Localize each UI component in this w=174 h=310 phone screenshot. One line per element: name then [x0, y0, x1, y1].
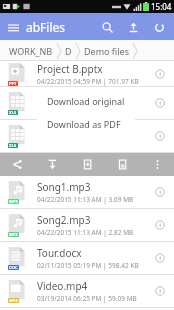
staticText: Download original	[47, 95, 125, 107]
staticText: MP4	[9, 298, 18, 303]
staticText: Song1.mp3	[37, 180, 91, 194]
staticText: quote.xlsx	[37, 91, 86, 105]
staticText: 02/11/2015 05:19 PM | 598.42 KB	[37, 261, 139, 270]
staticText: XLS	[9, 143, 17, 148]
button[interactable]: File info	[149, 214, 171, 236]
button[interactable]: Download as PDF	[37, 112, 135, 135]
button[interactable]: Download original	[37, 89, 135, 112]
staticText: 04/22/2015 11:13 AM | 12.21 KB	[37, 106, 136, 115]
button[interactable]: D	[62, 43, 75, 59]
button[interactable]: Download	[35, 153, 70, 176]
staticText: abFiles	[26, 19, 66, 35]
staticText: MP3	[9, 199, 18, 204]
staticText: Tour.docx	[37, 246, 82, 260]
button[interactable]: WORK_NB	[6, 43, 56, 59]
button[interactable]: MP3	[0, 176, 174, 208]
staticText: PPT	[9, 81, 17, 86]
button[interactable]: More options	[140, 153, 174, 176]
button[interactable]: MP3	[0, 209, 174, 241]
button[interactable]: Demo files	[81, 43, 132, 59]
staticText: Download as PDF	[47, 118, 121, 130]
button[interactable]: File info	[149, 92, 171, 114]
staticText: Project B.pptx	[37, 62, 103, 76]
button[interactable]: XLS	[0, 120, 174, 152]
button[interactable]: Copy	[70, 153, 105, 176]
staticText: 15:04	[151, 1, 172, 12]
button[interactable]: File info	[149, 63, 171, 85]
button[interactable]: Search	[94, 14, 120, 40]
button[interactable]: MP4	[0, 275, 174, 307]
button[interactable]: DOC	[0, 242, 174, 274]
staticText: D	[65, 45, 72, 57]
staticText: XLS	[9, 110, 17, 115]
button[interactable]: Open navigation drawer	[0, 14, 26, 40]
button[interactable]: File info	[149, 280, 171, 302]
button[interactable]: PPT	[0, 61, 174, 86]
staticText: Demo files	[84, 45, 129, 57]
button[interactable]: File info	[149, 125, 171, 147]
staticText: 04/22/2015 11:13 AM | 3.69 MB	[37, 195, 134, 204]
button[interactable]: Upload	[120, 14, 146, 40]
staticText: DOC	[9, 265, 18, 270]
staticText: Video.mp4	[37, 279, 88, 293]
staticText: 03/19/2014 06:25 PM | 59.09 MB	[37, 294, 137, 303]
button[interactable]: Move	[105, 153, 140, 176]
staticText: WORK_NB	[9, 45, 53, 57]
button[interactable]: Share	[0, 153, 35, 176]
button[interactable]: Refresh	[146, 14, 172, 40]
button[interactable]: XLS	[0, 87, 174, 119]
button[interactable]: File info	[149, 181, 171, 203]
staticText: 04/22/2015 11:13 AM | 2.82 MB	[37, 228, 134, 237]
button[interactable]: File info	[149, 247, 171, 269]
staticText: MP3	[9, 232, 18, 237]
staticText: Song2.mp3	[37, 213, 91, 227]
staticText: 04/22/2015 04:59 PM | 701.97 KB	[37, 77, 139, 86]
